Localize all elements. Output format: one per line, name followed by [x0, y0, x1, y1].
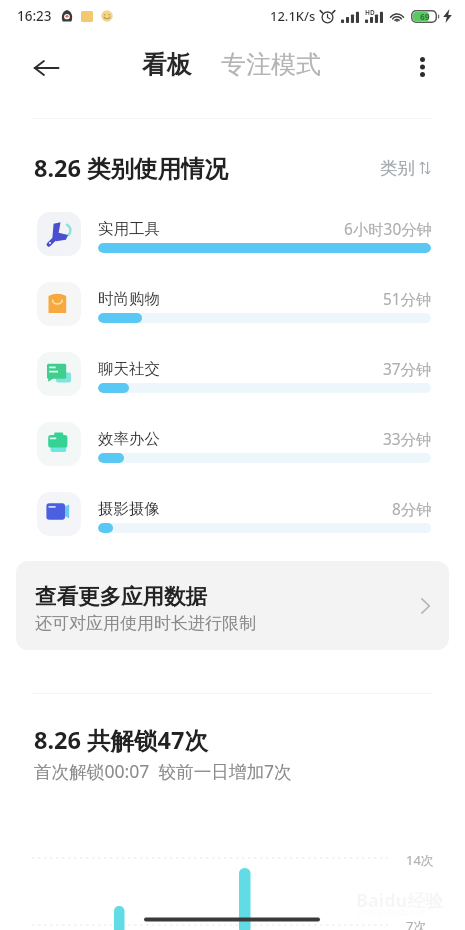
button[interactable]: Back [25, 47, 67, 89]
button[interactable]: 效率办公 [0, 408, 465, 478]
staticText: 14次 [406, 851, 434, 869]
button[interactable]: 专注模式 [217, 43, 325, 86]
button[interactable]: More options [402, 47, 442, 87]
staticText: 聊天社交 [98, 359, 160, 379]
staticText: 8分钟 [392, 499, 432, 520]
staticText: 摄影摄像 [98, 499, 160, 519]
staticText: 类别 [380, 157, 415, 179]
button[interactable]: 实用工具 [0, 198, 465, 268]
staticText: 16:23 [17, 7, 52, 25]
staticText: Baidu经验 [356, 888, 444, 913]
staticText: 还可对应用使用时长进行限制 [35, 613, 256, 634]
staticText: 51分钟 [383, 289, 432, 310]
staticText: 33分钟 [383, 429, 432, 450]
staticText: 时尚购物 [98, 289, 160, 309]
staticText: 查看更多应用数据 [35, 583, 207, 610]
staticText: 69 [420, 11, 430, 23]
staticText: 看板 [142, 49, 192, 80]
staticText: 效率办公 [98, 429, 160, 449]
button[interactable]: 时尚购物 [0, 268, 465, 338]
staticText: 首次解锁00:07 较前一日增加7次 [34, 759, 292, 783]
button[interactable]: 看板 [138, 43, 196, 86]
staticText: 6小时30分钟 [344, 219, 432, 240]
button[interactable]: 查看更多应用数据 [16, 561, 449, 650]
staticText: 专注模式 [221, 49, 321, 80]
button[interactable]: 类别 [380, 157, 431, 179]
staticText: 8.26 共解锁47次 [34, 724, 208, 756]
staticText: 37分钟 [383, 359, 432, 380]
staticText: 12.1K/s [270, 7, 316, 25]
staticText: 8.26 类别使用情况 [34, 152, 229, 184]
staticText: 7次 [406, 917, 427, 930]
button[interactable]: 摄影摄像 [0, 478, 465, 548]
button[interactable]: 聊天社交 [0, 338, 465, 408]
staticText: HD [365, 8, 375, 17]
staticText: 实用工具 [98, 219, 160, 239]
